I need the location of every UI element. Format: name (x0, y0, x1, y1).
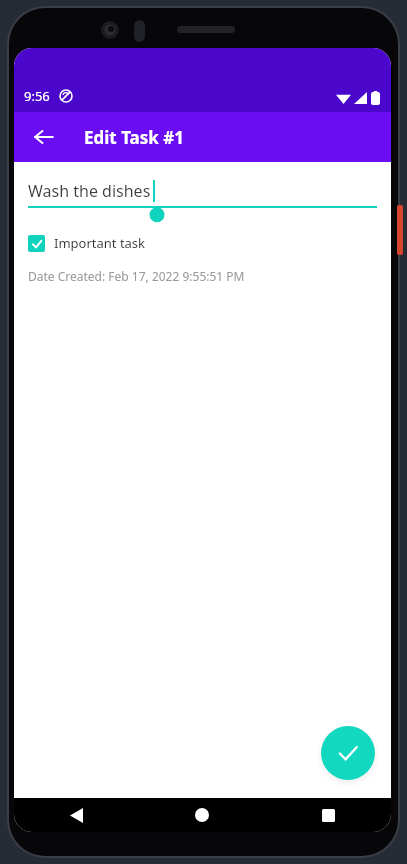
staticText: Date Created: Feb 17, 2022 9:55:51 PM (28, 268, 245, 284)
button[interactable]: Recent apps (265, 798, 391, 832)
button[interactable]: Home (139, 798, 265, 832)
button[interactable]: Back (14, 798, 139, 832)
button[interactable]: Important task (28, 228, 146, 258)
button[interactable]: Back (28, 121, 60, 153)
button[interactable]: Wash the dishes (28, 174, 377, 208)
staticText: Wash the dishes (28, 180, 151, 202)
staticText: Edit Task #1 (84, 126, 184, 149)
staticText: 9:56 (24, 87, 50, 105)
button[interactable]: Save task (321, 726, 375, 780)
staticText: Important task (54, 234, 146, 252)
